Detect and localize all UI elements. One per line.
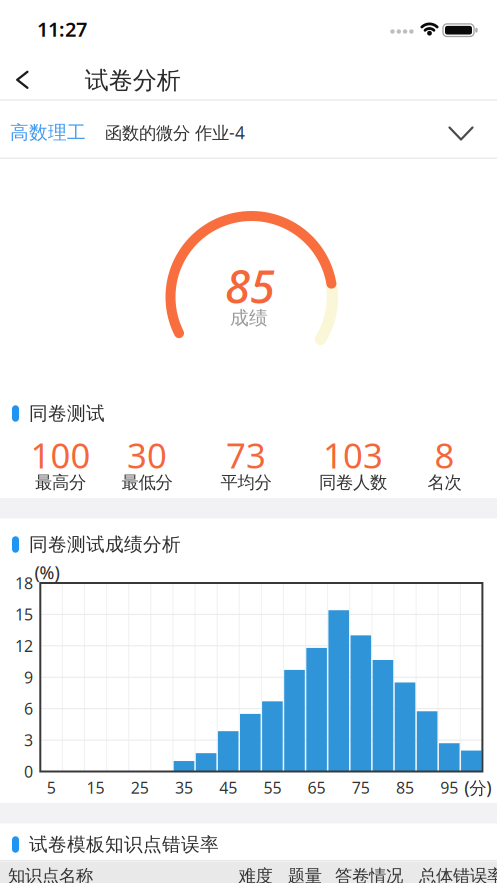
staticText: 75 bbox=[352, 777, 370, 798]
staticText: 30 bbox=[127, 432, 167, 478]
staticText: 函数的微分 作业-4 bbox=[105, 121, 245, 144]
staticText: 65 bbox=[308, 777, 326, 798]
staticText: (%) bbox=[34, 561, 59, 584]
staticText: 最高分 bbox=[35, 472, 86, 493]
staticText: 6 bbox=[24, 698, 33, 719]
staticText: 45 bbox=[219, 777, 237, 798]
staticText: 9 bbox=[24, 667, 33, 688]
staticText: 85 bbox=[396, 777, 414, 798]
staticText: 11:27 bbox=[37, 16, 87, 42]
staticText: 试卷分析 bbox=[85, 66, 181, 95]
staticText: 15 bbox=[15, 604, 33, 625]
staticText: 85 bbox=[225, 256, 275, 316]
staticText: 题量 bbox=[288, 865, 322, 883]
staticText: 试卷模板知识点错误率 bbox=[29, 833, 219, 856]
staticText: 同卷人数 bbox=[319, 472, 387, 493]
staticText: 15 bbox=[87, 777, 105, 798]
staticText: 55 bbox=[263, 777, 281, 798]
staticText: 3 bbox=[24, 729, 33, 751]
button[interactable] bbox=[0, 58, 44, 102]
staticText: 总体错误率 bbox=[419, 865, 497, 883]
staticText: 平均分 bbox=[220, 472, 271, 493]
staticText: 35 bbox=[175, 777, 193, 798]
staticText: 12 bbox=[15, 635, 33, 656]
staticText: 18 bbox=[15, 572, 33, 594]
staticText: 100 bbox=[30, 432, 90, 478]
staticText: 成绩 bbox=[230, 306, 268, 329]
staticText: 95 bbox=[440, 777, 458, 798]
staticText: 25 bbox=[131, 777, 149, 798]
staticText: 名次 bbox=[427, 472, 461, 493]
staticText: 答卷情况 bbox=[335, 865, 403, 883]
staticText: 最低分 bbox=[121, 472, 172, 493]
staticText: (分) bbox=[464, 776, 491, 799]
staticText: 知识点名称 bbox=[8, 865, 93, 883]
staticText: 难度 bbox=[238, 865, 272, 883]
staticText: 同卷测试 bbox=[29, 402, 105, 425]
staticText: 5 bbox=[47, 777, 56, 798]
button[interactable]: 高数理工 bbox=[0, 101, 497, 158]
staticText: 8 bbox=[434, 432, 454, 478]
staticText: 103 bbox=[323, 432, 383, 478]
staticText: 同卷测试成绩分析 bbox=[29, 533, 181, 556]
staticText: 73 bbox=[226, 432, 266, 478]
staticText: 高数理工 bbox=[10, 121, 86, 144]
staticText: 0 bbox=[24, 761, 33, 782]
